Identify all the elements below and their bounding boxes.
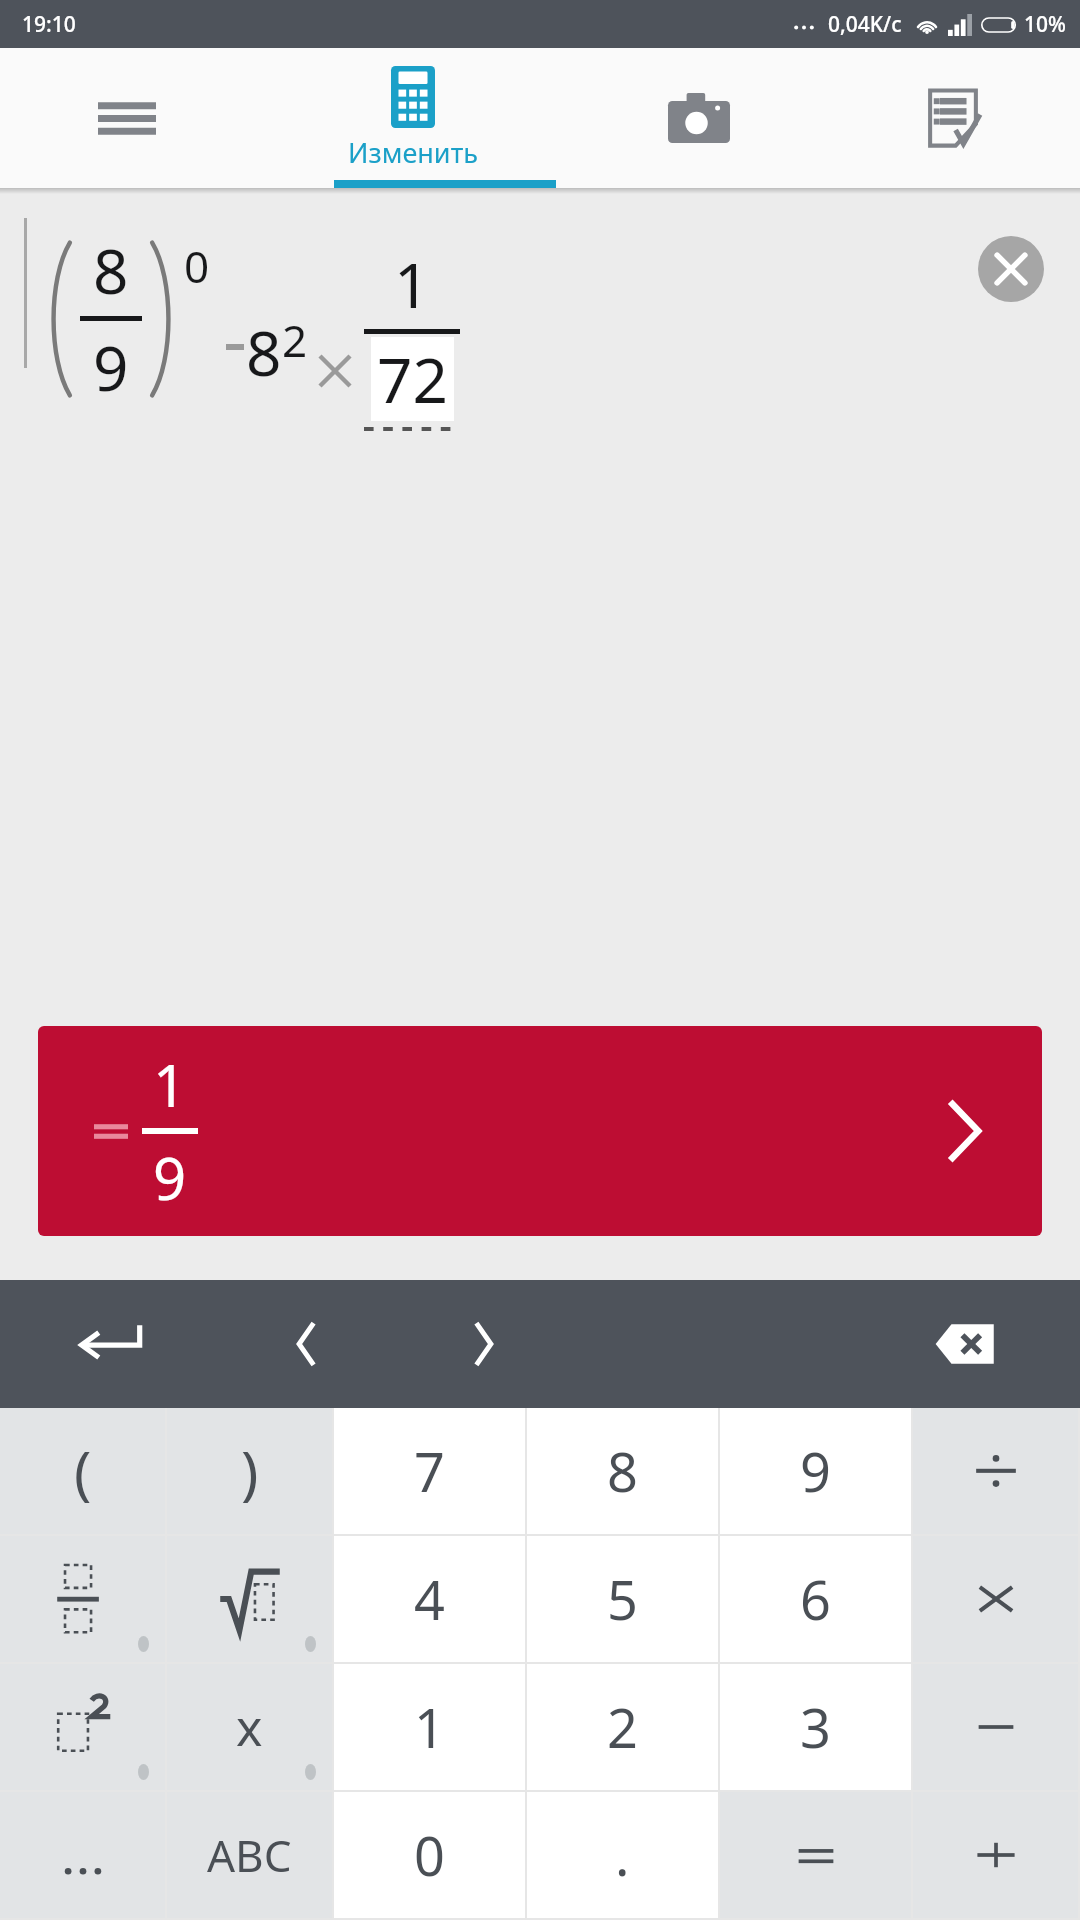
button[interactable]: 2 bbox=[527, 1664, 718, 1790]
staticText: ) bbox=[241, 1432, 259, 1511]
staticText: 6 bbox=[800, 1562, 831, 1636]
button[interactable]: Move right bbox=[395, 1280, 571, 1408]
staticText: 0 bbox=[414, 1818, 445, 1892]
button[interactable]: 1 bbox=[334, 1664, 525, 1790]
button[interactable]: Enter bbox=[0, 1280, 219, 1408]
staticText: 9 bbox=[800, 1434, 831, 1508]
staticText: 1 bbox=[153, 1045, 187, 1124]
button[interactable]: Move left bbox=[219, 1280, 395, 1408]
button[interactable]: Multiply bbox=[913, 1536, 1078, 1662]
button[interactable]: Menu bbox=[0, 48, 254, 188]
button[interactable]: . bbox=[527, 1792, 718, 1918]
button[interactable]: Camera bbox=[572, 48, 826, 188]
staticText: 8 bbox=[93, 228, 129, 312]
button[interactable]: x bbox=[167, 1664, 332, 1790]
button[interactable]: Square root bbox=[167, 1536, 332, 1662]
button[interactable]: Plus bbox=[913, 1792, 1078, 1918]
button[interactable]: Clear bbox=[978, 236, 1044, 302]
button[interactable]: ) bbox=[167, 1408, 332, 1534]
button[interactable]: Minus bbox=[913, 1664, 1078, 1790]
staticText: 2 bbox=[607, 1690, 638, 1764]
staticText: 0,04K/c bbox=[828, 10, 902, 39]
button[interactable]: Power bbox=[0, 1664, 165, 1790]
staticText: 9 bbox=[153, 1138, 187, 1217]
staticText: 3 bbox=[800, 1690, 831, 1764]
button[interactable]: 5 bbox=[527, 1536, 718, 1662]
button[interactable]: ( bbox=[0, 1408, 165, 1534]
button[interactable]: Изменить bbox=[254, 48, 572, 188]
button[interactable]: 7 bbox=[334, 1408, 525, 1534]
button[interactable]: More bbox=[0, 1792, 165, 1918]
staticText: 4 bbox=[414, 1562, 445, 1636]
button[interactable]: Next bbox=[934, 1101, 994, 1161]
staticText: ABC bbox=[207, 1825, 292, 1885]
staticText: . bbox=[615, 1818, 630, 1892]
button[interactable]: 9 bbox=[720, 1408, 911, 1534]
button[interactable]: 1 bbox=[38, 1026, 1042, 1236]
button[interactable]: History bbox=[826, 48, 1080, 188]
staticText: 8 bbox=[246, 310, 282, 394]
button[interactable]: 8 bbox=[527, 1408, 718, 1534]
staticText: 8 bbox=[607, 1434, 638, 1508]
staticText: 9 bbox=[93, 325, 129, 409]
button[interactable]: 3 bbox=[720, 1664, 911, 1790]
button[interactable]: Fraction bbox=[0, 1536, 165, 1662]
button[interactable]: 6 bbox=[720, 1536, 911, 1662]
button[interactable]: Backspace bbox=[852, 1280, 1080, 1408]
button[interactable]: 0 bbox=[334, 1792, 525, 1918]
staticText: 0 bbox=[184, 236, 210, 296]
staticText: Изменить bbox=[348, 134, 478, 171]
button[interactable]: 4 bbox=[334, 1536, 525, 1662]
button[interactable]: Equals bbox=[720, 1792, 911, 1918]
staticText: 10% bbox=[1024, 10, 1066, 39]
staticText: 1 bbox=[394, 242, 430, 326]
staticText: 7 bbox=[414, 1434, 445, 1508]
staticText: 72 bbox=[377, 337, 448, 421]
staticText: x bbox=[236, 1693, 263, 1761]
staticText: 5 bbox=[607, 1562, 638, 1636]
button[interactable]: Divide bbox=[913, 1408, 1078, 1534]
staticText: 2 bbox=[282, 310, 308, 370]
staticText: 19:10 bbox=[22, 10, 76, 39]
staticText: ( bbox=[74, 1432, 92, 1511]
button[interactable]: ABC bbox=[167, 1792, 332, 1918]
staticText: 1 bbox=[414, 1690, 445, 1764]
